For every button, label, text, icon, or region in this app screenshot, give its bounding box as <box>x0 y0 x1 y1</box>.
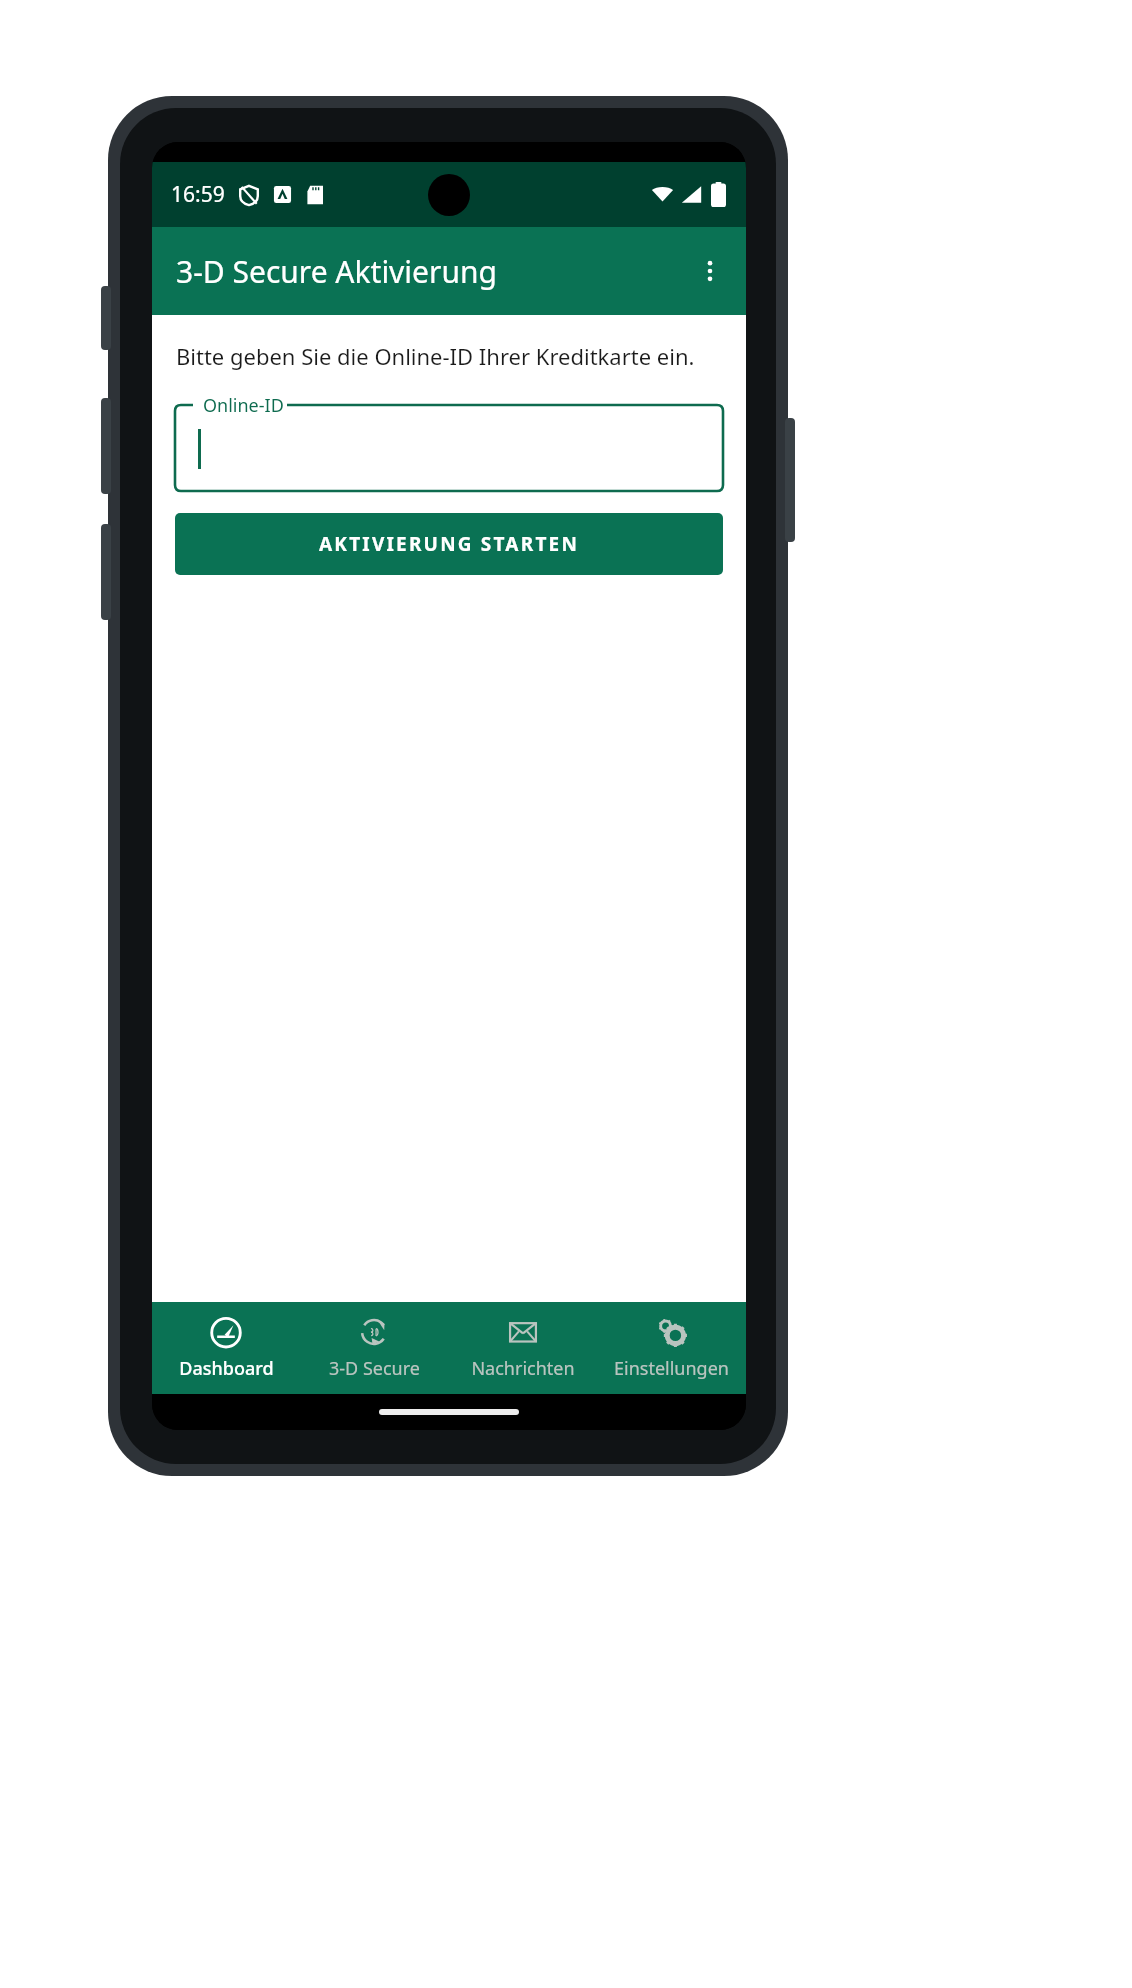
button[interactable]: 3-D Secure <box>300 1302 448 1394</box>
button[interactable]: AKTIVIERUNG STARTEN <box>175 513 723 575</box>
button[interactable]: Dashboard <box>152 1302 300 1394</box>
staticText: Bitte geben Sie die Online-ID Ihrer Kred… <box>176 341 695 371</box>
button[interactable]: Online-ID <box>175 393 723 491</box>
staticText: 16:59 <box>171 180 225 209</box>
staticText: Einstellungen <box>614 1356 729 1381</box>
staticText: AKTIVIERUNG STARTEN <box>319 531 580 557</box>
staticText: 3-D Secure <box>329 1356 420 1381</box>
button[interactable]: Einstellungen <box>597 1302 746 1394</box>
staticText: Dashboard <box>179 1356 274 1381</box>
button[interactable]: Nachrichten <box>448 1302 597 1394</box>
staticText: 3-D Secure Aktivierung <box>176 251 497 292</box>
staticText: Nachrichten <box>471 1356 575 1381</box>
button[interactable]: More options <box>682 243 738 299</box>
staticText: Online-ID <box>203 393 284 418</box>
